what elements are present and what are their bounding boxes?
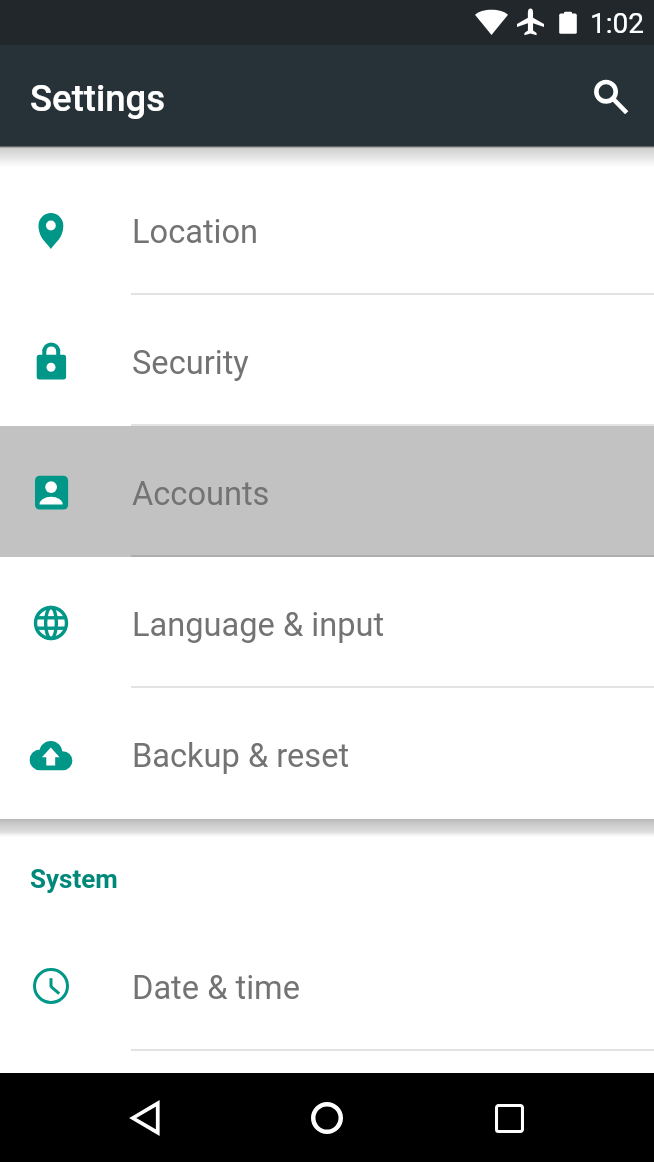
button[interactable]: Home [287,1078,367,1158]
button[interactable]: Location [0,164,654,295]
button[interactable]: Backup & reset [0,688,654,819]
button[interactable]: Date & time [0,920,654,1051]
staticText: Language & input [132,606,385,644]
staticText: Date & time [132,969,300,1007]
staticText: 1:02 [590,7,644,40]
button[interactable]: Accounts [0,426,654,557]
staticText: System [30,864,118,894]
button[interactable]: Language & input [0,557,654,688]
staticText: Security [132,344,249,382]
button[interactable]: Search [576,62,640,126]
button[interactable]: Security [0,295,654,426]
staticText: Accounts [132,475,270,513]
button[interactable]: Recent apps [469,1078,549,1158]
staticText: Backup & reset [132,737,350,775]
staticText: Settings [30,77,166,120]
button[interactable]: Back [105,1078,185,1158]
staticText: Location [132,213,259,251]
